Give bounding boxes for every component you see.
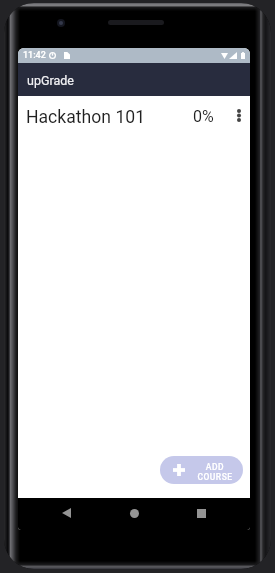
button[interactable]: More options xyxy=(228,104,250,126)
button[interactable]: Recents xyxy=(188,503,214,523)
staticText: Hackathon 101 xyxy=(26,107,146,128)
staticText: upGrade xyxy=(27,73,74,88)
button[interactable]: Hackathon 101 xyxy=(18,96,250,134)
button[interactable]: Back xyxy=(53,503,79,523)
staticText: 0% xyxy=(193,107,214,126)
staticText: ADD COURSE xyxy=(193,462,237,482)
button[interactable]: ADD COURSE xyxy=(160,456,243,484)
button[interactable]: Home xyxy=(121,503,147,523)
staticText: 11:42 xyxy=(23,50,46,61)
button[interactable]: upGrade xyxy=(18,63,250,96)
